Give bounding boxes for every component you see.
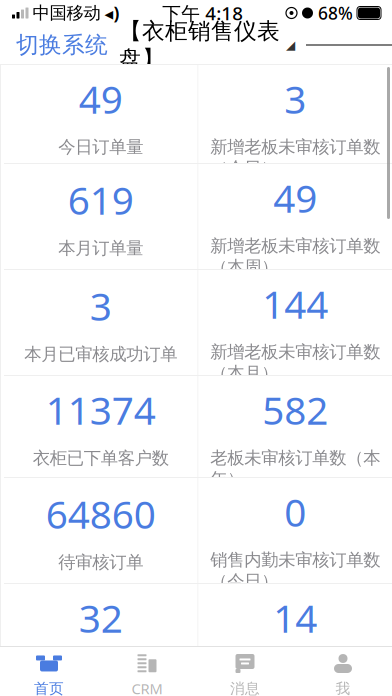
button[interactable]: 144 <box>198 270 392 375</box>
staticText: 切换系统 <box>16 31 108 59</box>
button[interactable]: 切换系统 <box>0 23 108 67</box>
staticText: 销售内勤未审核订单数（今日） <box>210 549 380 592</box>
button[interactable]: CRM <box>98 645 196 696</box>
staticText: CRM <box>131 679 162 696</box>
staticText: 我 <box>335 679 350 696</box>
staticText: 中国移动 <box>32 2 100 24</box>
staticText: 49 <box>273 172 317 223</box>
staticText: 下午 4:18 <box>162 1 243 25</box>
staticText: 老板未审核订单数（本年） <box>210 447 380 490</box>
staticText: 64860 <box>46 488 156 539</box>
button[interactable]: 49 <box>4 65 197 163</box>
button[interactable]: 首页 <box>0 645 98 696</box>
staticText: 本月订单量 <box>58 237 143 259</box>
staticText: ◂) <box>104 1 119 24</box>
staticText: 新增老板未审核订单数（今日） <box>210 136 380 179</box>
staticText: 3 <box>284 73 306 124</box>
staticText: 衣柜已下单客户数 <box>33 447 169 469</box>
staticText: 3 <box>90 280 112 331</box>
staticText: 消息 <box>230 679 260 696</box>
staticText: 32 <box>79 592 123 643</box>
staticText: 本月已审核成功订单 <box>24 343 177 365</box>
button[interactable]: 32 <box>4 584 197 650</box>
button[interactable]: 582 <box>198 376 392 477</box>
staticText: 144 <box>262 278 328 329</box>
staticText: 68% <box>318 1 353 24</box>
staticText: 619 <box>68 174 134 225</box>
button[interactable]: 14 <box>198 584 392 650</box>
button[interactable]: 49 <box>198 164 392 269</box>
button[interactable]: 【衣柜销售仪表盘】 <box>119 9 295 81</box>
button[interactable]: 64860 <box>4 478 197 583</box>
staticText: 首页 <box>34 679 64 696</box>
button[interactable]: 消息 <box>196 645 294 696</box>
staticText: 0 <box>284 486 306 537</box>
button[interactable]: 11374 <box>4 376 197 477</box>
staticText: 49 <box>79 73 123 124</box>
staticText: 今日订单量 <box>58 136 143 158</box>
button[interactable]: 我 <box>294 645 392 696</box>
button[interactable]: 3 <box>198 65 392 163</box>
staticText: 待审核订单 <box>58 551 143 573</box>
staticText: 新增老板未审核订单数（本周） <box>210 235 380 278</box>
staticText: ◢ <box>286 38 295 52</box>
staticText: 【衣柜销售仪表盘】 <box>119 17 280 73</box>
button[interactable]: 0 <box>198 478 392 583</box>
button[interactable]: 619 <box>4 164 197 269</box>
button[interactable]: 3 <box>4 270 197 375</box>
staticText: 14 <box>273 592 317 643</box>
staticText: 新增老板未审核订单数（本月） <box>210 341 380 384</box>
staticText: 582 <box>262 384 328 435</box>
staticText: 11374 <box>46 384 156 435</box>
